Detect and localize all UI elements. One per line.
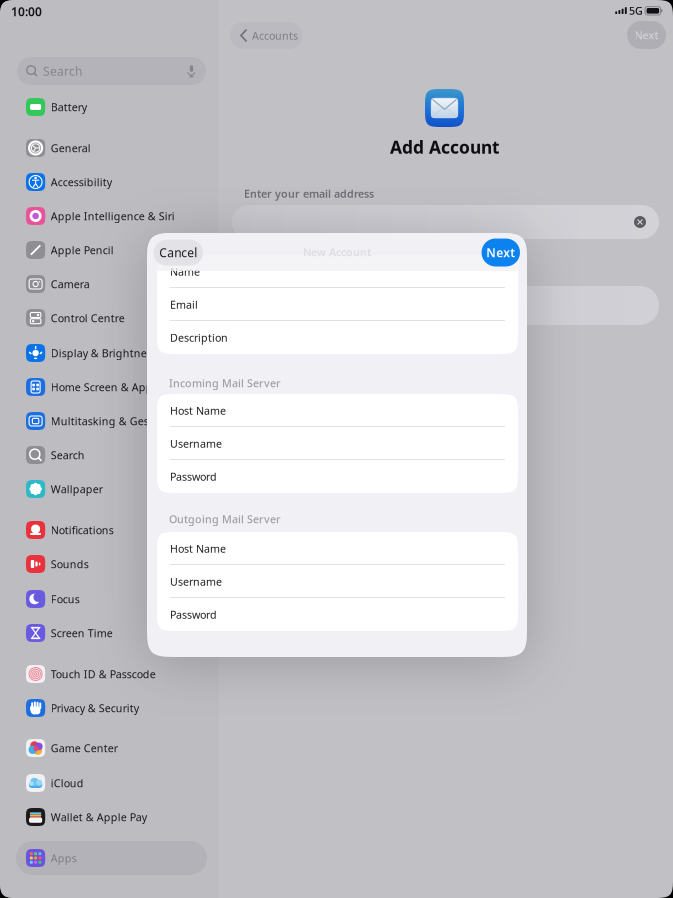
button[interactable]: Wallpaper	[16, 472, 207, 506]
staticText: 10:00	[11, 3, 42, 19]
button[interactable]: Screen Time	[16, 616, 207, 650]
staticText: Focus	[51, 592, 80, 606]
staticText: Outgoing Mail Server	[169, 512, 281, 526]
button[interactable]: Display & Brightness	[16, 336, 207, 370]
staticText: Multitasking & Gestures	[51, 414, 175, 428]
staticText: Apple Intelligence & Siri	[51, 209, 175, 223]
button[interactable]: Search	[17, 57, 206, 85]
staticText: Cancel	[159, 245, 197, 261]
button[interactable]: Multitasking & Gestures	[16, 404, 207, 438]
staticText: Control Centre	[51, 311, 125, 325]
staticText: Name	[170, 264, 200, 279]
staticText: Host Name	[170, 541, 226, 556]
staticText: Incoming Mail Server	[169, 376, 281, 390]
button[interactable]: Accounts	[230, 22, 303, 49]
staticText: Username	[170, 574, 222, 589]
button[interactable]: Username	[157, 565, 518, 598]
button[interactable]: Wallet & Apple Pay	[16, 800, 207, 834]
staticText: Next	[634, 28, 658, 42]
button[interactable]: Password	[157, 460, 518, 493]
button[interactable]: Password	[157, 598, 518, 631]
button[interactable]: Name	[157, 255, 518, 288]
staticText: Display & Brightness	[51, 346, 157, 360]
staticText: Host Name	[170, 403, 226, 418]
button[interactable]: General	[16, 131, 207, 165]
button[interactable]: Host Name	[157, 394, 518, 427]
staticText: Description	[170, 330, 228, 345]
staticText: Password	[170, 469, 217, 484]
button[interactable]: Notifications	[16, 513, 207, 547]
staticText: Search	[51, 448, 85, 462]
button[interactable]: Camera	[16, 267, 207, 301]
staticText: Notifications	[51, 523, 114, 537]
button[interactable]: Game Center	[16, 731, 207, 765]
staticText: Password	[170, 607, 217, 622]
staticText: Accessibility	[51, 175, 112, 189]
button[interactable]: Next	[481, 238, 520, 266]
button[interactable]: Home Screen & App Library	[16, 370, 207, 404]
staticText: Wallpaper	[51, 482, 103, 496]
staticText: Camera	[51, 277, 90, 291]
button[interactable]: Battery	[16, 90, 207, 124]
staticText: Wallet & Apple Pay	[51, 810, 147, 824]
staticText: Home Screen & App Library	[51, 380, 191, 394]
button[interactable]: Accessibility	[16, 165, 207, 199]
button[interactable]: Apple Pencil	[16, 233, 207, 267]
staticText: Apple Pencil	[51, 243, 114, 257]
staticText: Game Center	[51, 741, 118, 755]
staticText: New Account	[303, 245, 371, 259]
button[interactable]: Touch ID & Passcode	[16, 657, 207, 691]
button[interactable]: Cancel	[153, 240, 203, 266]
staticText: Enter your email address	[244, 186, 374, 201]
button[interactable]: Apple Intelligence & Siri	[16, 199, 207, 233]
button[interactable]: Apps	[16, 841, 207, 875]
button[interactable]: Focus	[16, 582, 207, 616]
staticText: Touch ID & Passcode	[51, 667, 156, 681]
staticText: 5G	[629, 3, 643, 18]
staticText: Add Account	[390, 135, 500, 158]
button[interactable]: iCloud	[16, 766, 207, 800]
button[interactable]: Email	[157, 288, 518, 321]
button[interactable]: Privacy & Security	[16, 691, 207, 725]
button[interactable]: Control Centre	[16, 301, 207, 335]
staticText: Accounts	[252, 28, 298, 43]
staticText: Sounds	[51, 557, 89, 571]
staticText: iCloud	[51, 776, 84, 790]
staticText: Username	[170, 436, 222, 451]
button[interactable]: Host Name	[157, 532, 518, 565]
staticText: Next	[486, 244, 515, 260]
button[interactable]: Username	[157, 427, 518, 460]
staticText: General	[51, 141, 91, 155]
button[interactable]: Next	[627, 21, 666, 49]
staticText: Battery	[51, 100, 87, 114]
staticText: Privacy & Security	[51, 701, 139, 715]
button[interactable]: Sounds	[16, 547, 207, 581]
staticText: Search	[43, 63, 82, 79]
staticText: Email	[170, 297, 198, 312]
staticText: Screen Time	[51, 626, 113, 640]
button[interactable]: Description	[157, 321, 518, 354]
button[interactable]: Search	[16, 438, 207, 472]
staticText: Apps	[51, 851, 77, 865]
